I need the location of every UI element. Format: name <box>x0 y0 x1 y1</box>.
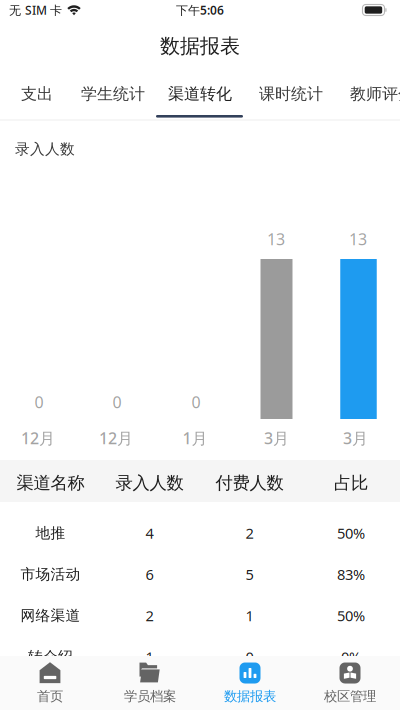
staticText: 支出 <box>21 84 53 104</box>
staticText: 转介绍 <box>28 648 73 666</box>
button[interactable]: 学员档案 <box>100 656 200 710</box>
button[interactable]: 教师评分 <box>343 78 400 110</box>
staticText: 市场活动 <box>20 565 80 583</box>
staticText: 数据报表 <box>224 688 276 704</box>
button[interactable]: 数据报表 <box>200 656 300 710</box>
staticText: 0 <box>112 391 121 413</box>
staticText: 渠道名称 <box>16 472 84 494</box>
staticText: 学员档案 <box>124 688 176 704</box>
staticText: 50% <box>337 523 365 543</box>
staticText: 占比 <box>334 472 368 494</box>
staticText: 教师评分 <box>350 84 400 104</box>
button[interactable]: 课时统计 <box>252 78 330 110</box>
button[interactable]: 首页 <box>0 656 100 710</box>
staticText: 83% <box>337 565 365 584</box>
staticText: 13 <box>267 228 285 250</box>
button[interactable]: 渠道转化 <box>161 78 239 110</box>
staticText: 录入人数 <box>15 140 75 158</box>
staticText: 地推 <box>35 524 65 542</box>
staticText: 渠道转化 <box>168 84 232 104</box>
staticText: 3月 <box>343 427 368 449</box>
staticText: 4 <box>145 523 153 543</box>
button[interactable]: 支出 <box>14 78 60 110</box>
staticText: 13 <box>349 228 367 250</box>
staticText: 下午5:06 <box>176 2 224 18</box>
staticText: 1 <box>145 647 153 667</box>
staticText: 1月 <box>182 427 207 449</box>
staticText: 0 <box>34 391 43 413</box>
staticText: 3月 <box>264 427 289 449</box>
button[interactable]: 学生统计 <box>74 78 152 110</box>
staticText: 课时统计 <box>259 84 323 104</box>
staticText: 12月 <box>99 427 133 449</box>
staticText: 首页 <box>37 688 63 704</box>
staticText: 录入人数 <box>115 472 183 494</box>
staticText: 网络渠道 <box>20 607 80 625</box>
staticText: 无 SIM 卡 <box>9 2 62 18</box>
staticText: 5 <box>245 565 253 584</box>
staticText: 50% <box>337 606 365 625</box>
staticText: 0% <box>341 647 361 667</box>
staticText: 6 <box>145 565 153 584</box>
staticText: 数据报表 <box>160 34 240 58</box>
staticText: 付费人数 <box>215 472 283 494</box>
staticText: 12月 <box>21 427 55 449</box>
staticText: 校区管理 <box>324 688 376 704</box>
staticText: 2 <box>245 523 253 543</box>
staticText: 0 <box>191 391 200 413</box>
staticText: 0 <box>245 647 253 667</box>
staticText: 2 <box>145 606 153 625</box>
button[interactable]: 校区管理 <box>300 656 400 710</box>
staticText: 1 <box>245 606 253 625</box>
staticText: 学生统计 <box>81 84 145 104</box>
